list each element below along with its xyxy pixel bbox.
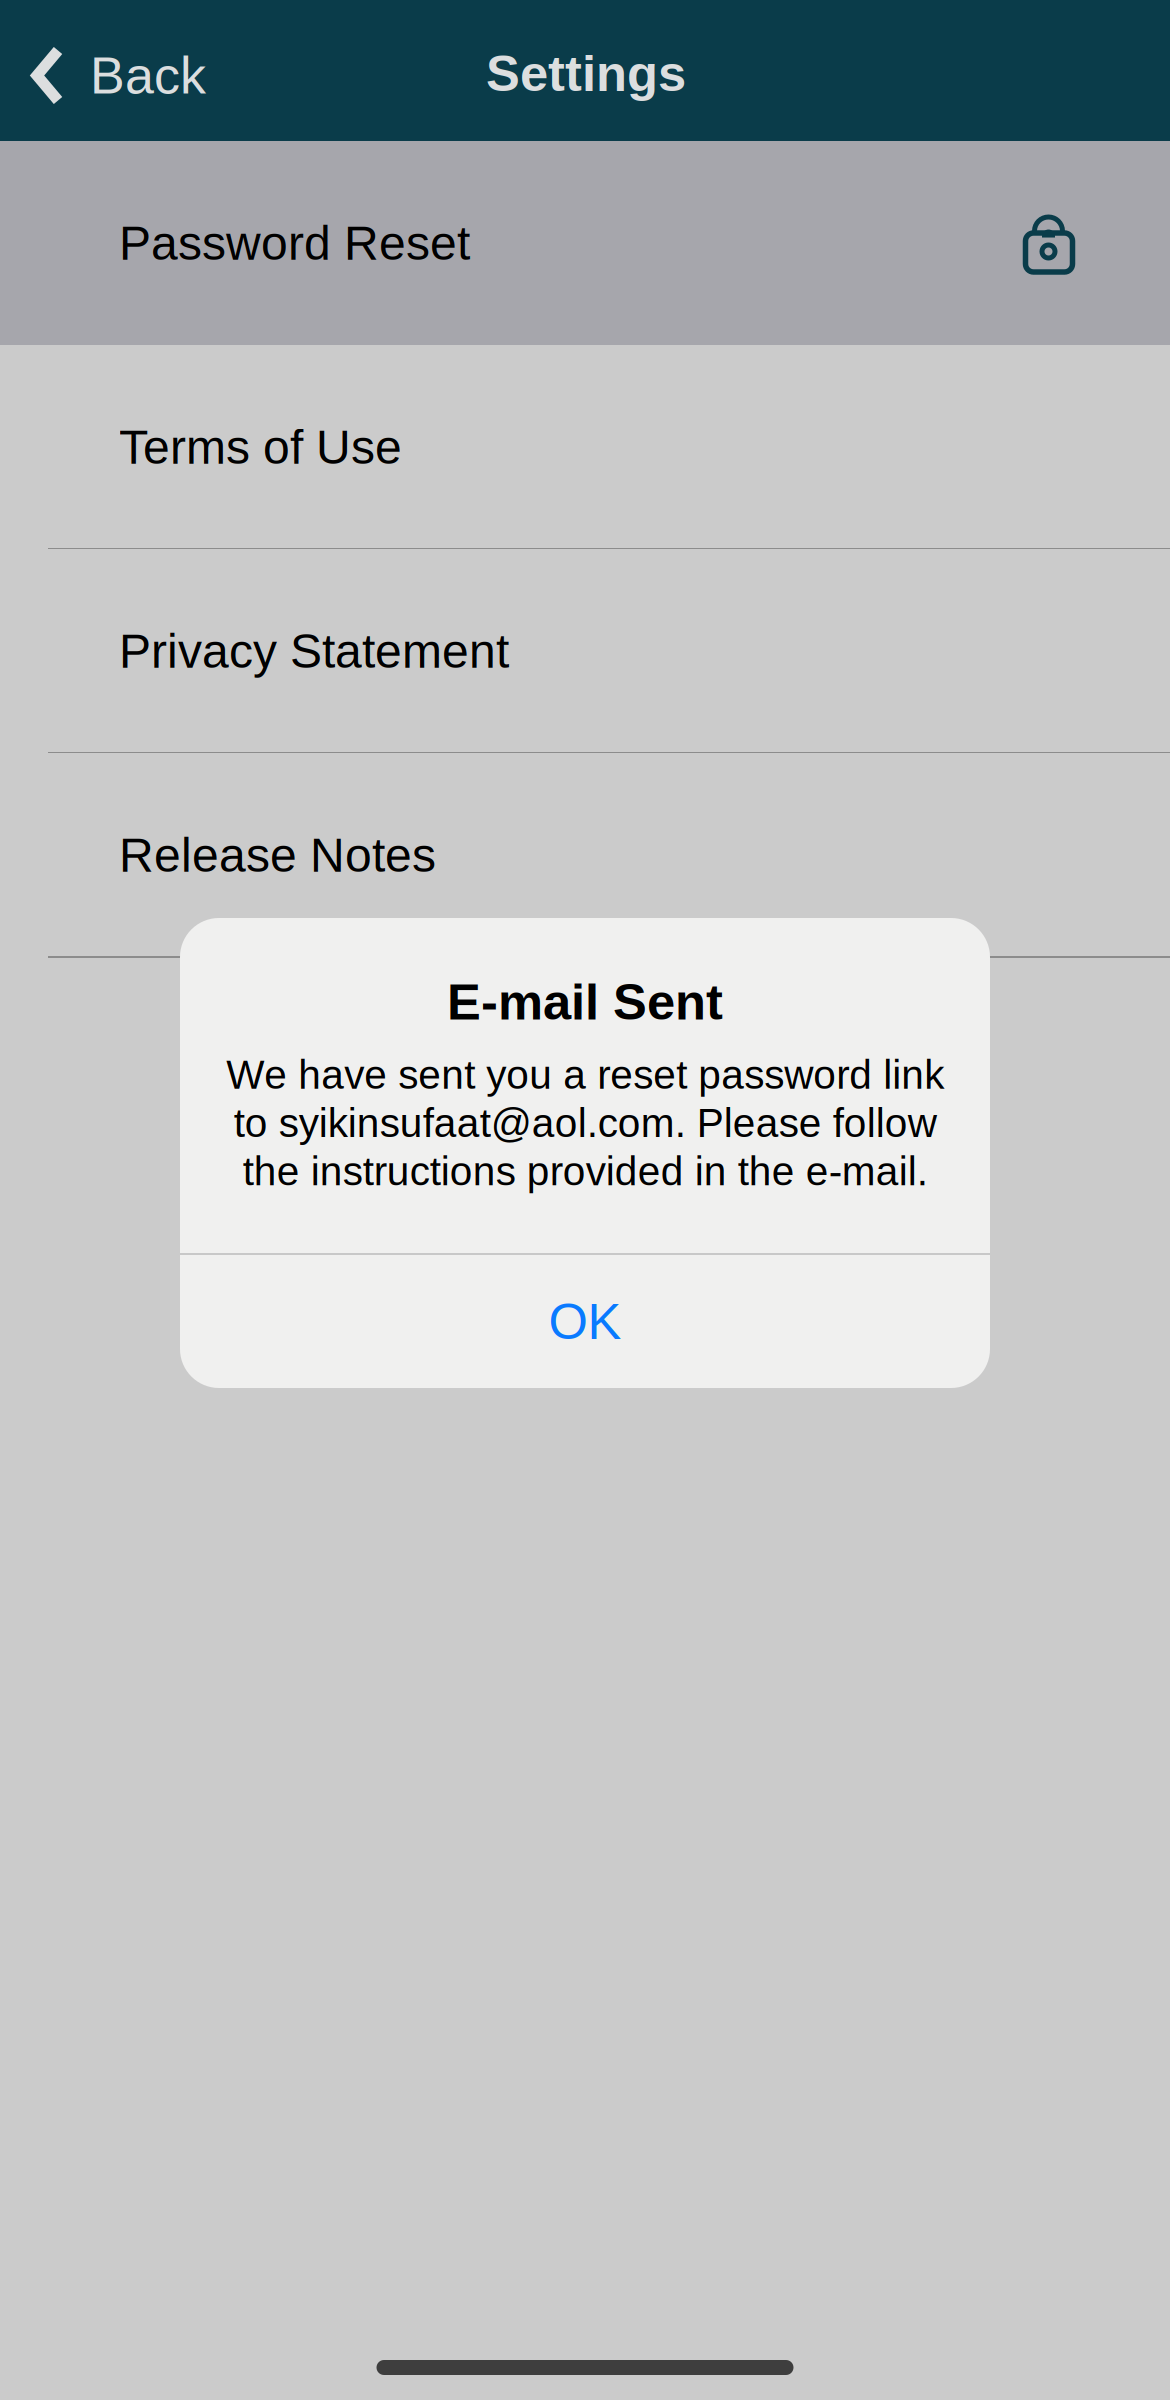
button[interactable]: Terms of Use xyxy=(0,345,1170,549)
button[interactable]: Release Notes xyxy=(0,753,1170,957)
staticText: Settings xyxy=(486,45,686,102)
staticText: E-mail Sent xyxy=(447,974,723,1030)
button[interactable]: Back xyxy=(0,0,235,141)
staticText: Release Notes xyxy=(119,828,436,882)
staticText: Back xyxy=(90,46,206,105)
staticText: OK xyxy=(548,1293,621,1350)
button[interactable]: Password Reset xyxy=(0,141,1170,345)
button[interactable]: Privacy Statement xyxy=(0,549,1170,753)
staticText: Password Reset xyxy=(119,216,470,270)
staticText: Terms of Use xyxy=(119,420,402,474)
staticText: Privacy Statement xyxy=(119,624,509,678)
staticText: We have sent you a reset password link t… xyxy=(226,1052,944,1194)
button[interactable]: OK xyxy=(180,1255,990,1388)
